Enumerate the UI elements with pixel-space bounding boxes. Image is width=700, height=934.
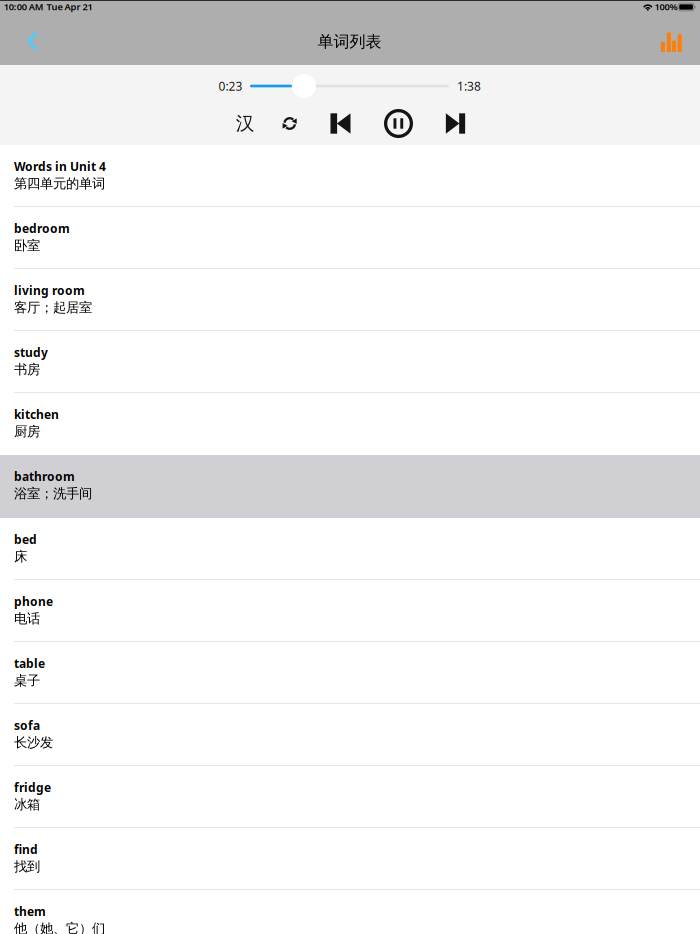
- staticText: bed: [14, 531, 37, 547]
- button[interactable]: sofa: [0, 704, 700, 766]
- staticText: 0:23: [218, 78, 242, 94]
- staticText: 卧室: [14, 237, 40, 254]
- button[interactable]: bed: [0, 518, 700, 580]
- button[interactable]: bathroom: [0, 455, 700, 518]
- button[interactable]: fridge: [0, 766, 700, 828]
- staticText: 厨房: [14, 423, 40, 440]
- staticText: Tue Apr 21: [47, 0, 93, 13]
- staticText: 书房: [14, 361, 40, 378]
- button[interactable]: find: [0, 828, 700, 890]
- staticText: 长沙发: [14, 734, 53, 751]
- staticText: living room: [14, 282, 85, 298]
- staticText: study: [14, 344, 48, 360]
- button[interactable]: phone: [0, 580, 700, 642]
- staticText: bedroom: [14, 220, 70, 236]
- staticText: 1:38: [457, 78, 481, 94]
- staticText: sofa: [14, 717, 40, 733]
- button[interactable]: Statistics: [651, 20, 691, 64]
- button[interactable]: kitchen: [0, 393, 700, 455]
- staticText: 第四单元的单词: [14, 175, 105, 192]
- staticText: 桌子: [14, 672, 40, 689]
- staticText: 电话: [14, 610, 40, 627]
- staticText: fridge: [14, 779, 51, 795]
- button[interactable]: bedroom: [0, 207, 700, 269]
- staticText: 冰箱: [14, 796, 40, 813]
- staticText: Words in Unit 4: [14, 158, 106, 174]
- staticText: 汉: [236, 112, 255, 135]
- button[interactable]: Pause: [376, 106, 420, 140]
- button[interactable]: Back: [12, 19, 52, 63]
- staticText: table: [14, 655, 45, 671]
- staticText: 浴室；洗手间: [14, 485, 92, 502]
- staticText: them: [14, 903, 46, 919]
- staticText: find: [14, 841, 38, 857]
- button[interactable]: them: [0, 890, 700, 934]
- staticText: 100%: [654, 0, 677, 13]
- button[interactable]: Toggle Chinese: [226, 106, 264, 140]
- button[interactable]: Repeat: [271, 106, 309, 140]
- staticText: phone: [14, 593, 53, 609]
- staticText: kitchen: [14, 406, 59, 422]
- staticText: 床: [14, 548, 27, 565]
- button[interactable]: Previous: [319, 106, 361, 140]
- button[interactable]: table: [0, 642, 700, 704]
- staticText: 找到: [14, 858, 40, 875]
- staticText: 客厅；起居室: [14, 299, 92, 316]
- button[interactable]: study: [0, 331, 700, 393]
- staticText: 他（她、它）们: [14, 920, 105, 934]
- staticText: 10:00 AM: [4, 0, 44, 13]
- staticText: 单词列表: [317, 32, 381, 52]
- button[interactable]: Words in Unit 4: [0, 145, 700, 207]
- staticText: bathroom: [14, 468, 75, 484]
- button[interactable]: living room: [0, 269, 700, 331]
- button[interactable]: Next: [434, 106, 476, 140]
